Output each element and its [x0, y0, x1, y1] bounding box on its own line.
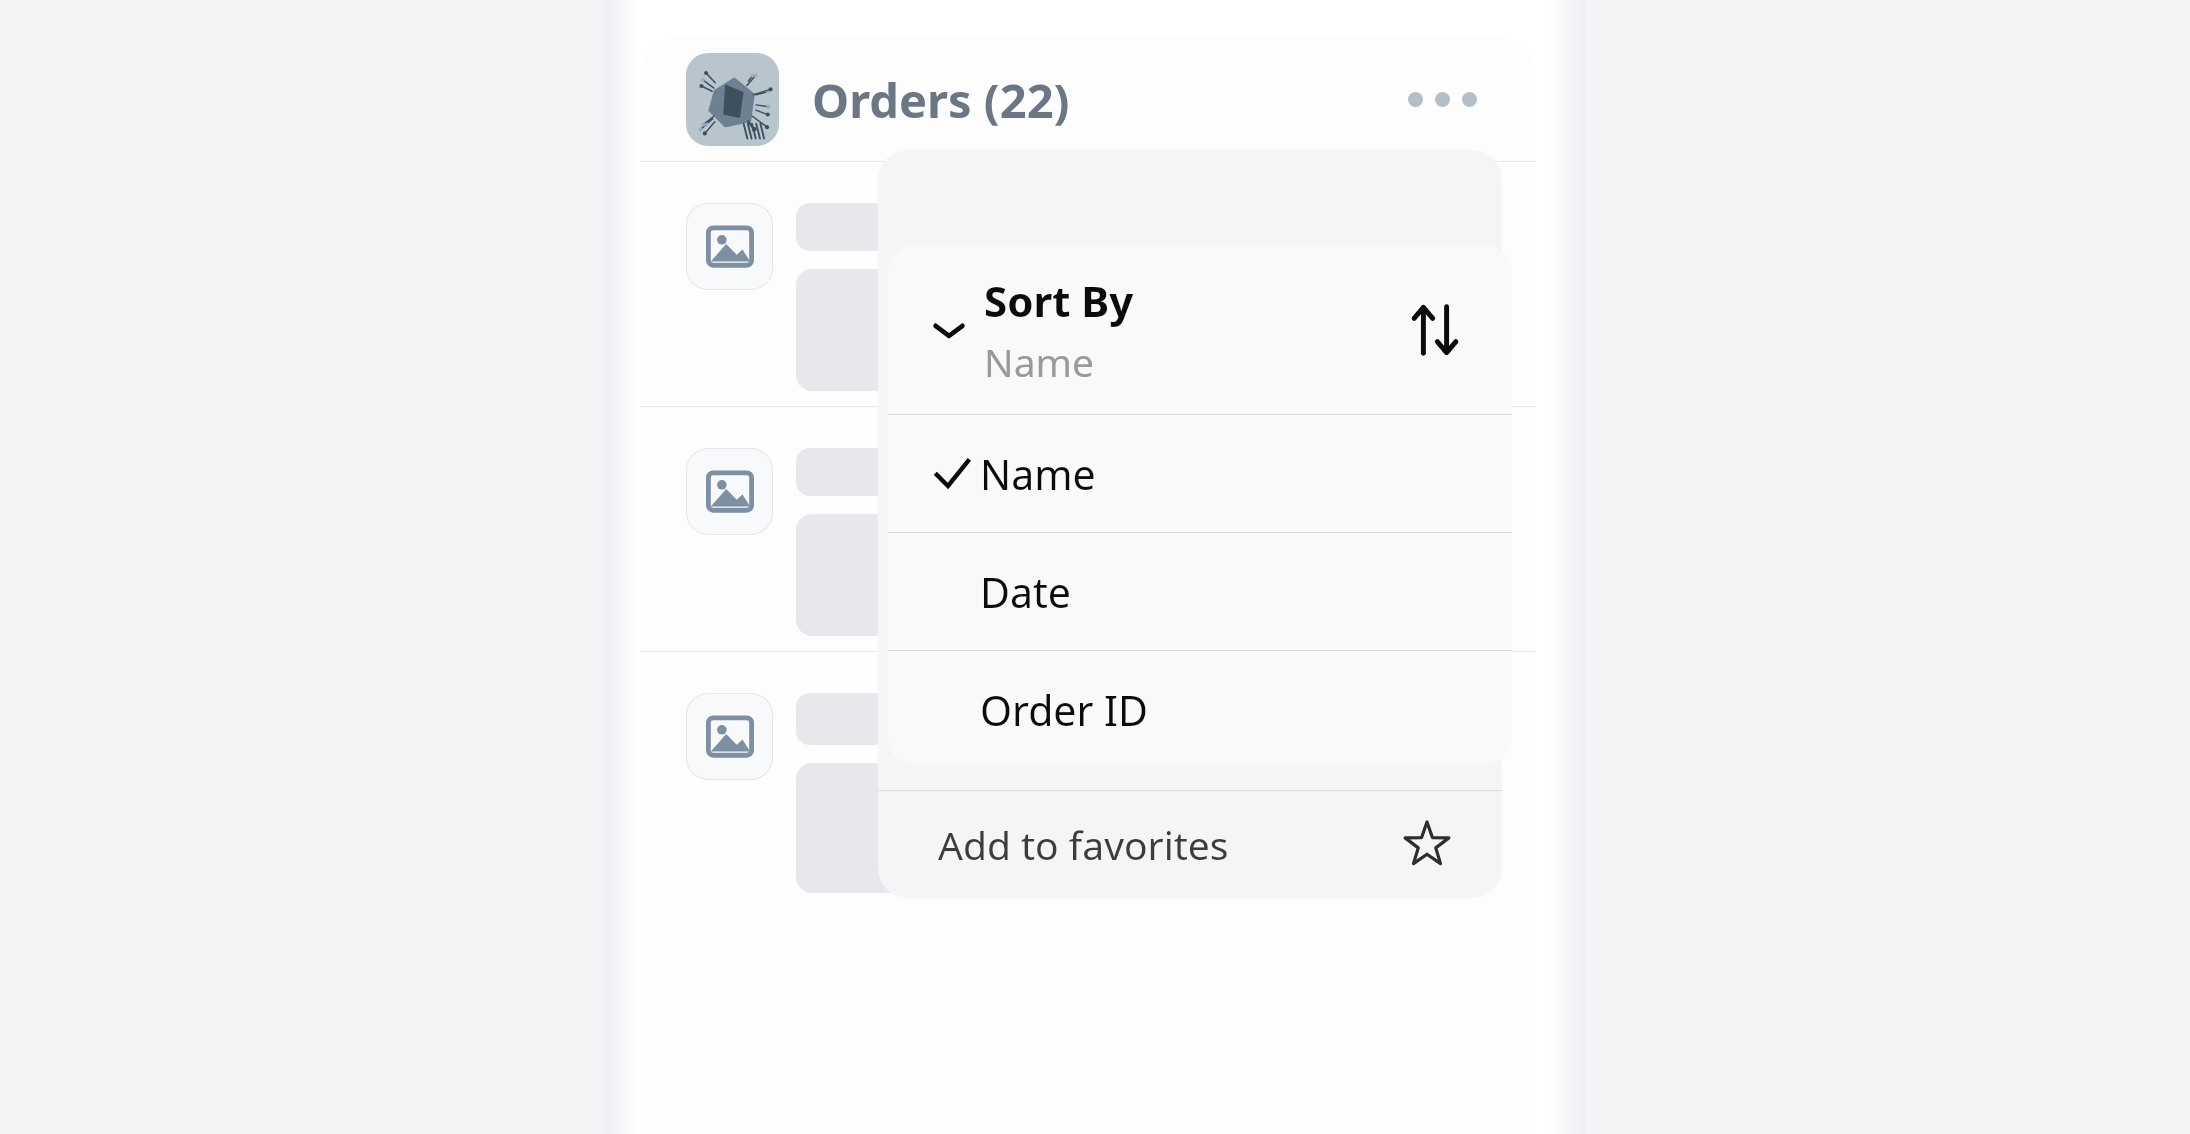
button[interactable]: Order ID	[888, 651, 1512, 765]
staticText: Order ID	[980, 682, 1148, 738]
button[interactable]: Sort By	[888, 245, 1512, 414]
staticText: Name	[980, 446, 1096, 502]
other: Toggle sort direction	[1406, 301, 1464, 359]
button[interactable]: Date	[888, 533, 1512, 650]
button[interactable]	[640, 406, 1535, 651]
button[interactable]: Name	[888, 415, 1512, 532]
staticText: Date	[980, 564, 1071, 620]
staticText: Name	[984, 335, 1094, 388]
staticText: Orders (22)	[812, 68, 1070, 132]
button[interactable]: Orders (22)	[640, 38, 1535, 161]
button[interactable]: Add to favorites	[878, 791, 1502, 898]
button[interactable]	[640, 161, 1535, 406]
button[interactable]	[640, 651, 1535, 896]
staticText: Add to favorites	[938, 818, 1229, 871]
staticText: Sort By	[984, 272, 1134, 329]
button[interactable]: More options	[1396, 80, 1489, 119]
